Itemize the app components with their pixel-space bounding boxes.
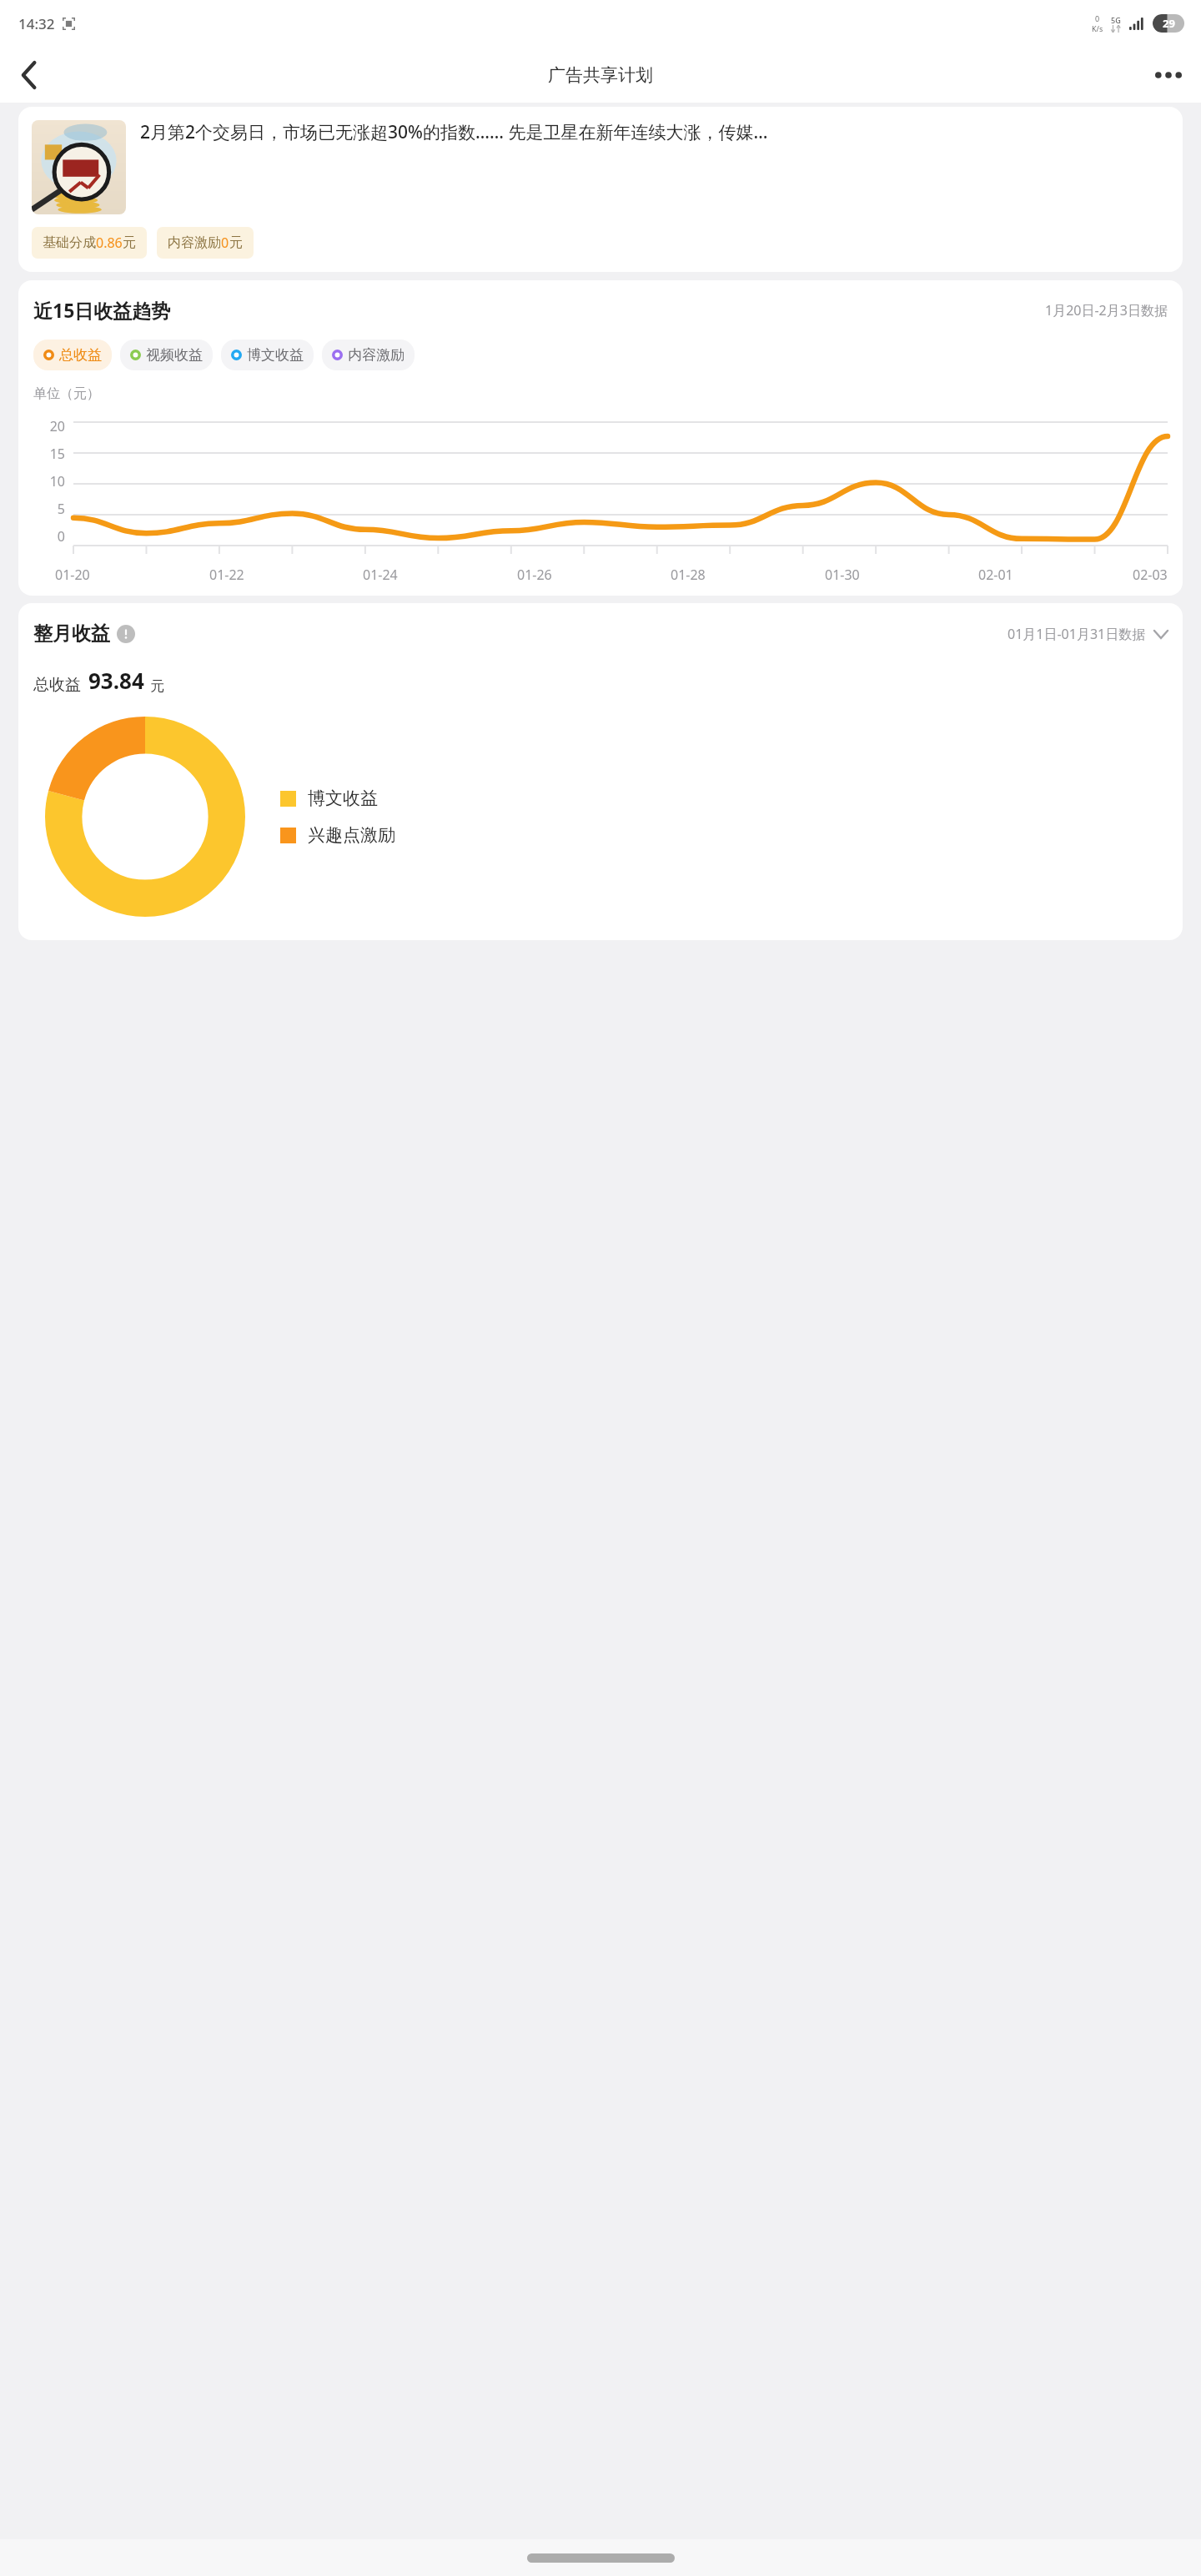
staticText: 广告共享计划 [548, 64, 653, 86]
staticText: 01-30 [825, 566, 860, 584]
button[interactable]: 总收益 [33, 340, 112, 370]
staticText: 0 [57, 527, 65, 546]
staticText: 近15日收益趋势 [33, 297, 171, 323]
staticText: 01-22 [209, 566, 244, 584]
button[interactable]: Back [7, 53, 52, 98]
staticText: 01月1日-01月31日数据 [1008, 625, 1146, 643]
button[interactable]: 视频收益 [120, 340, 213, 370]
staticText: 02-03 [1133, 566, 1168, 584]
staticText: 2月第2个交易日，市场已无涨超30%的指数…… 先是卫星在新年连续大涨，传媒… [140, 120, 1169, 144]
button[interactable]: More options [1146, 53, 1191, 98]
button[interactable]: 博文收益 [221, 340, 314, 370]
staticText: 元 [229, 234, 243, 251]
staticText: 20 [49, 417, 65, 435]
staticText: 02-01 [978, 566, 1013, 584]
staticText: 博文收益 [247, 346, 304, 364]
staticText: 整月收益 [33, 621, 110, 646]
staticText: K/s [1092, 23, 1103, 33]
button[interactable]: Info [117, 625, 135, 643]
staticText: 视频收益 [146, 346, 203, 364]
staticText: 内容激励 [348, 346, 405, 364]
staticText: 元 [150, 677, 164, 695]
staticText: 5 [57, 500, 65, 518]
staticText: 14:32 [18, 14, 55, 33]
button[interactable]: 内容激励 [157, 227, 254, 259]
staticText: 元 [123, 234, 136, 251]
staticText: 0.86 [96, 234, 123, 252]
staticText: 29 [1163, 16, 1175, 31]
staticText: 内容激励 [168, 234, 221, 251]
button[interactable]: 基础分成 [32, 227, 147, 259]
staticText: 0 [221, 234, 229, 252]
staticText: 总收益 [33, 675, 81, 695]
staticText: 0 [1095, 13, 1100, 23]
staticText: 单位（元） [33, 385, 100, 402]
button[interactable]: 内容激励 [322, 340, 415, 370]
staticText: 01-20 [55, 566, 90, 584]
staticText: 15 [49, 445, 65, 463]
staticText: 兴趣点激励 [308, 824, 395, 846]
staticText: 93.84 [88, 666, 144, 695]
staticText: 博文收益 [308, 787, 378, 809]
button[interactable]: 2月第2个交易日，市场已无涨超30%的指数…… 先是卫星在新年连续大涨，传媒… [18, 107, 1183, 272]
staticText: 01-24 [363, 566, 398, 584]
staticText: 基础分成 [43, 234, 96, 251]
staticText: 1月20日-2月3日数据 [1045, 301, 1168, 319]
staticText: 5G [1111, 15, 1121, 25]
staticText: 01-26 [517, 566, 552, 584]
staticText: 总收益 [59, 346, 102, 364]
staticText: 10 [49, 472, 65, 491]
staticText: 01-28 [671, 566, 706, 584]
button[interactable]: 01月1日-01月31日数据 [1008, 625, 1168, 643]
